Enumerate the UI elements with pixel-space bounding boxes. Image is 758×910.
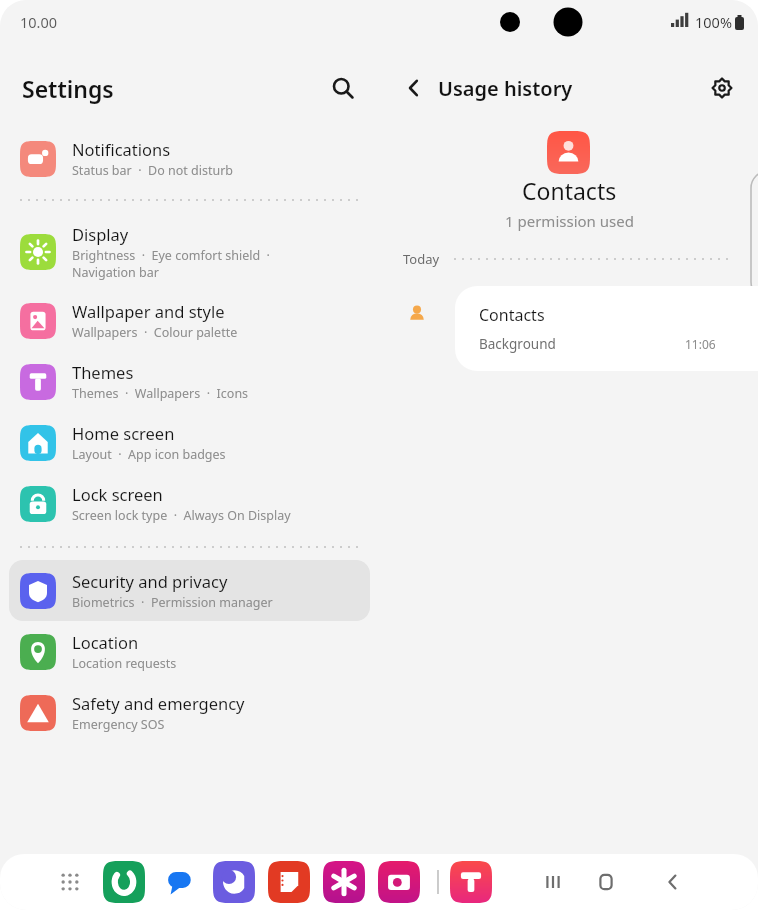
staticText: Emergency SOS	[72, 716, 165, 733]
staticText: Today	[403, 250, 440, 268]
button[interactable]: Back	[394, 68, 434, 108]
button[interactable]: Notes	[268, 861, 310, 903]
button[interactable]: Search	[323, 68, 363, 108]
button[interactable]: Home screen	[9, 412, 370, 473]
staticText: Layout · App icon badges	[72, 446, 226, 463]
button[interactable]: Back	[650, 859, 696, 905]
staticText: 1 permission used	[505, 211, 634, 231]
button[interactable]: Apps	[52, 864, 88, 900]
button[interactable]: Messages	[158, 861, 200, 903]
staticText: Lock screen	[72, 483, 163, 505]
staticText: Usage history	[438, 75, 573, 102]
button[interactable]: Security and privacy	[9, 560, 370, 621]
button[interactable]: Internet	[213, 861, 255, 903]
staticText: Home screen	[72, 422, 175, 444]
button[interactable]: Gallery	[323, 861, 365, 903]
button[interactable]: Camera	[378, 861, 420, 903]
staticText: Contacts	[479, 304, 545, 326]
staticText: Screen lock type · Always On Display	[72, 507, 291, 524]
staticText: Security and privacy	[72, 570, 228, 592]
staticText: Biometrics · Permission manager	[72, 594, 273, 611]
staticText: Location requests	[72, 655, 177, 672]
staticText: Wallpapers · Colour palette	[72, 324, 238, 341]
staticText: Contacts	[522, 175, 617, 206]
button[interactable]: Display	[9, 213, 370, 290]
staticText: Themes · Wallpapers · Icons	[72, 385, 249, 402]
button[interactable]: Safety and emergency	[9, 682, 370, 743]
button[interactable]: Phone	[103, 861, 145, 903]
staticText: 100%	[695, 12, 732, 32]
staticText: Safety and emergency	[72, 692, 245, 714]
button[interactable]: Recents	[530, 859, 576, 905]
staticText: Location	[72, 631, 139, 653]
button[interactable]: Home	[583, 859, 629, 905]
staticText: Brightness · Eye comfort shield · Naviga…	[72, 247, 270, 280]
staticText: Background	[479, 335, 556, 353]
staticText: Display	[72, 223, 129, 245]
button[interactable]: Themes app	[450, 861, 492, 903]
staticText: Notifications	[72, 138, 171, 160]
staticText: 10.00	[20, 12, 58, 32]
button[interactable]: Lock screen	[9, 473, 370, 534]
button[interactable]: Contacts	[455, 286, 758, 371]
staticText: Settings	[22, 73, 114, 104]
button[interactable]: Themes	[9, 351, 370, 412]
button[interactable]: Wallpaper and style	[9, 290, 370, 351]
button[interactable]: Notifications	[9, 128, 370, 189]
staticText: Status bar · Do not disturb	[72, 162, 234, 179]
staticText: Wallpaper and style	[72, 300, 225, 322]
staticText: Themes	[72, 361, 134, 383]
button[interactable]: Settings	[702, 68, 742, 108]
button[interactable]: Location	[9, 621, 370, 682]
staticText: 11:06	[685, 336, 716, 352]
